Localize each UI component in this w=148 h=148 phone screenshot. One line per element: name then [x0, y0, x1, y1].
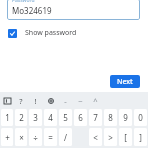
- staticText: Show password: [25, 28, 77, 38]
- staticText: 5: [63, 112, 68, 123]
- button[interactable]: 0: [134, 109, 147, 126]
- staticText: [: [124, 132, 127, 143]
- staticText: !: [34, 96, 37, 106]
- button[interactable]: 5: [59, 109, 72, 126]
- staticText: 0: [138, 112, 143, 123]
- button[interactable]: ^: [89, 94, 102, 107]
- other: Show password checkbox: [8, 29, 17, 38]
- staticText: ?: [19, 96, 23, 106]
- staticText: 2: [19, 112, 24, 123]
- button[interactable]: 9: [119, 109, 132, 126]
- button[interactable]: ~: [74, 94, 87, 107]
- button[interactable]: /: [59, 128, 72, 146]
- staticText: 6: [78, 112, 83, 123]
- staticText: <: [93, 132, 98, 143]
- staticText: +: [5, 132, 10, 143]
- staticText: =: [48, 132, 53, 143]
- button[interactable]: Next: [110, 75, 140, 88]
- button[interactable]: ]: [134, 128, 147, 146]
- staticText: ]: [139, 132, 142, 143]
- staticText: ×: [19, 132, 24, 143]
- staticText: 3: [33, 112, 38, 123]
- button[interactable]: 6: [74, 109, 87, 126]
- button[interactable]: Mo324619: [7, 0, 140, 20]
- button[interactable]: ?: [15, 94, 27, 107]
- button[interactable]: [: [119, 128, 132, 146]
- staticText: >: [108, 132, 113, 143]
- button[interactable]: <: [89, 128, 102, 146]
- staticText: ^: [93, 96, 98, 106]
- staticText: ÷: [33, 132, 38, 143]
- button[interactable]: -: [59, 94, 72, 107]
- staticText: Mo324619: [12, 5, 52, 16]
- staticText: 9: [123, 112, 128, 123]
- button[interactable]: ×: [15, 128, 27, 146]
- staticText: -: [64, 96, 67, 106]
- staticText: ~: [78, 96, 83, 106]
- button[interactable]: =: [44, 128, 57, 146]
- button[interactable]: 8: [104, 109, 117, 126]
- button[interactable]: Switch keyboard: [0, 93, 14, 108]
- button[interactable]: At sign: [43, 93, 58, 108]
- button[interactable]: 7: [89, 109, 102, 126]
- button[interactable]: 2: [15, 109, 27, 126]
- button[interactable]: !: [29, 94, 42, 107]
- staticText: Next: [117, 77, 133, 87]
- button[interactable]: +: [1, 128, 13, 146]
- button[interactable]: 1: [1, 109, 13, 126]
- button[interactable]: Show password checkbox: [8, 26, 77, 40]
- button[interactable]: ÷: [29, 128, 42, 146]
- staticText: Password: [12, 0, 35, 4]
- button[interactable]: 4: [44, 109, 57, 126]
- staticText: 8: [108, 112, 113, 123]
- staticText: 7: [93, 112, 98, 123]
- button[interactable]: >: [104, 128, 117, 146]
- staticText: 1: [5, 112, 10, 123]
- button[interactable]: 3: [29, 109, 42, 126]
- staticText: /: [64, 132, 67, 143]
- staticText: 4: [48, 112, 53, 123]
